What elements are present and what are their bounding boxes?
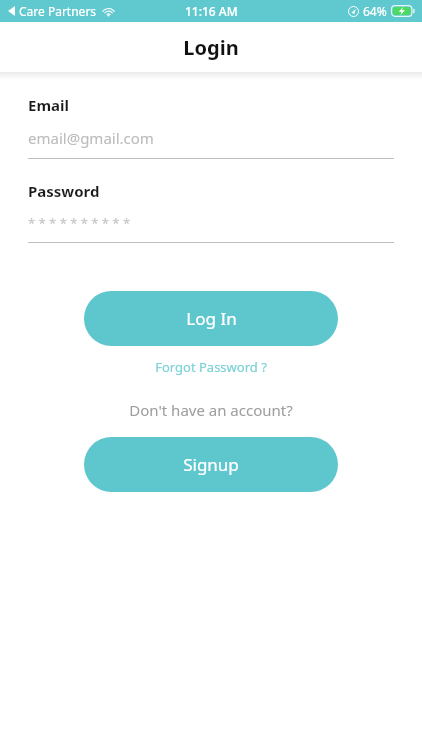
staticText: Don't have an account? <box>129 400 293 420</box>
staticText: 11:16 AM <box>185 3 238 19</box>
staticText: Care Partners <box>19 3 97 19</box>
staticText: * * * * * * * * * * <box>28 214 131 232</box>
staticText: Signup <box>183 453 239 476</box>
button[interactable]: Email <box>28 95 394 159</box>
staticText: Login <box>183 34 239 61</box>
staticText: Forgot Password ? <box>155 358 267 376</box>
staticText: Email <box>28 95 69 115</box>
staticText: Log In <box>186 307 237 330</box>
button[interactable]: Password <box>28 181 394 243</box>
button[interactable]: Signup <box>84 437 338 492</box>
button[interactable]: Forgot Password ? <box>0 354 422 380</box>
staticText: Password <box>28 181 100 201</box>
button[interactable]: Log In <box>84 291 338 346</box>
staticText: 64% <box>363 3 387 19</box>
staticText: email@gmail.com <box>28 128 154 148</box>
